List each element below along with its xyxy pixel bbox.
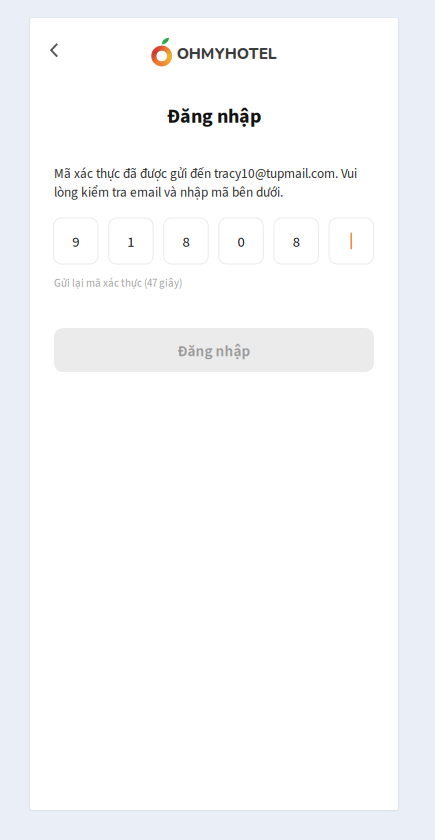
- button[interactable]: Số 1: [109, 218, 153, 264]
- button[interactable]: Gửi lại mã xác thực (47 giây): [54, 275, 182, 291]
- button[interactable]: Đăng nhập: [54, 328, 374, 372]
- staticText: Đăng nhập: [167, 102, 261, 131]
- button[interactable]: Quay lại: [37, 33, 71, 67]
- staticText: 0: [238, 232, 245, 253]
- staticText: 8: [182, 232, 189, 253]
- button[interactable]: Số 9: [53, 218, 98, 264]
- staticText: Đăng nhập: [177, 341, 250, 362]
- staticText: 9: [72, 232, 79, 253]
- staticText: 1: [127, 232, 134, 253]
- button[interactable]: Số 8: [274, 218, 318, 264]
- staticText: Mã xác thực đã được gửi đến tracy10@tupm…: [54, 164, 357, 202]
- button[interactable]: Số 0: [219, 218, 263, 264]
- button[interactable]: Số 8: [164, 218, 208, 264]
- staticText: 8: [293, 232, 300, 253]
- button[interactable]: Ô nhập mã: [329, 218, 373, 264]
- staticText: Gửi lại mã xác thực (47 giây): [54, 275, 182, 291]
- staticText: OHMYHOTEL: [177, 43, 277, 64]
